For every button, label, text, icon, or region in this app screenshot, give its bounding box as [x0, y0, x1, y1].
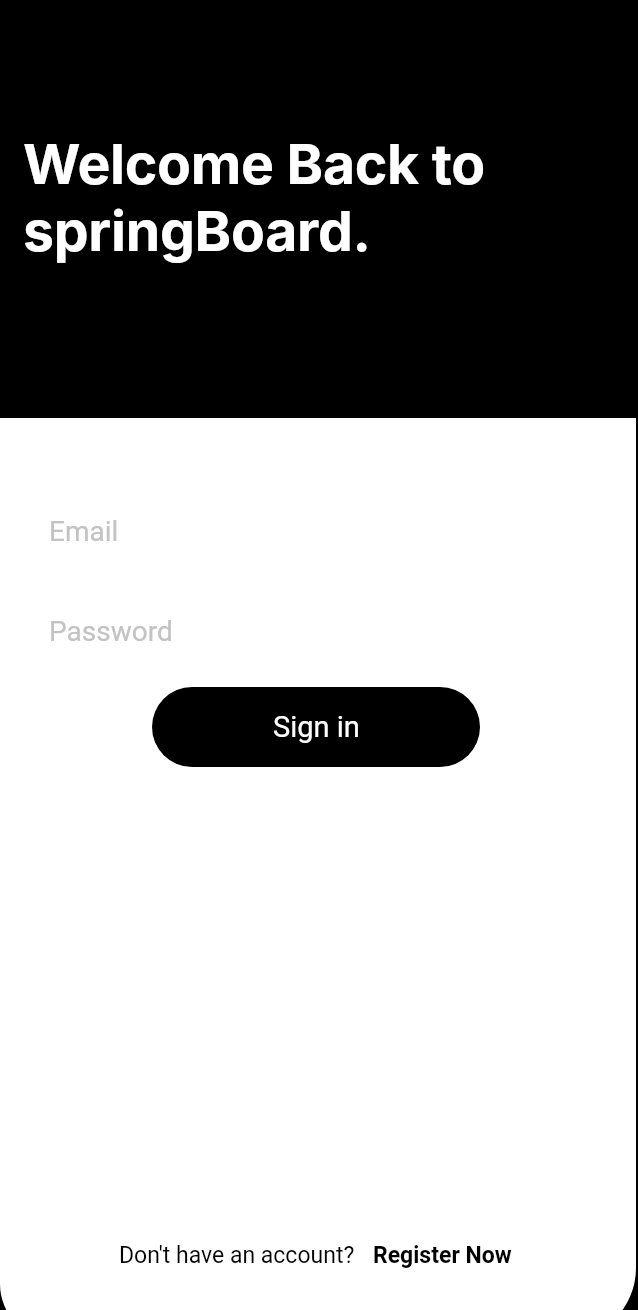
button[interactable]: Register Now [373, 1242, 512, 1269]
button[interactable]: Email input field [0, 503, 636, 559]
staticText: Password [49, 615, 173, 648]
staticText: Email [49, 515, 119, 548]
staticText: Welcome Back to springBoard. [23, 130, 485, 265]
staticText: Register Now [373, 1242, 512, 1269]
staticText: Sign in [273, 710, 360, 744]
button[interactable]: Password input field [0, 603, 636, 659]
button[interactable]: Sign in [152, 687, 480, 767]
staticText: Don't have an account? [119, 1242, 355, 1269]
